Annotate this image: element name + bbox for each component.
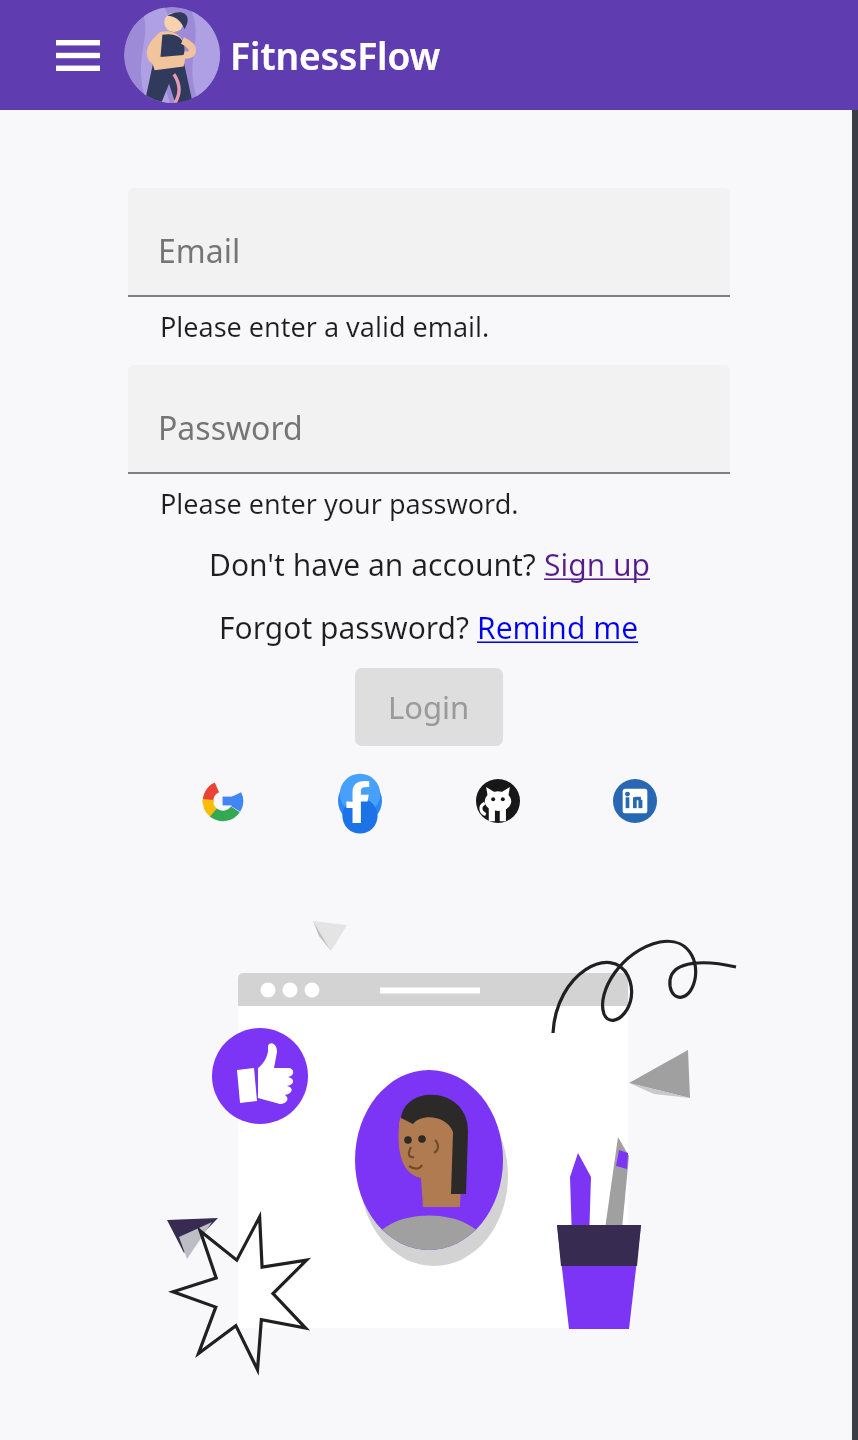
button[interactable]: FitnessFlow logo [124, 7, 220, 103]
button[interactable]: Sign in with GitHub [473, 776, 523, 826]
button[interactable]: Sign in with Facebook [335, 776, 385, 826]
button[interactable]: Email [128, 188, 730, 297]
staticText: Forgot password? [219, 607, 477, 648]
button[interactable]: Open navigation menu [54, 31, 102, 79]
staticText: Password [158, 406, 303, 450]
button[interactable]: Remind me [477, 607, 639, 648]
staticText: Login [388, 686, 470, 728]
staticText: Don't have an account? [209, 544, 544, 585]
button[interactable]: Sign in with LinkedIn [610, 776, 660, 826]
staticText: Sign up [544, 544, 650, 585]
staticText: Remind me [477, 607, 639, 648]
staticText: Please enter a valid email. [160, 308, 490, 345]
staticText: Email [158, 229, 241, 273]
staticText: FitnessFlow [230, 30, 441, 80]
staticText: Please enter your password. [160, 485, 519, 522]
button[interactable]: Login [355, 668, 503, 746]
button[interactable]: Sign in with Google [198, 776, 248, 826]
button[interactable]: Password [128, 365, 730, 474]
button[interactable]: Sign up [544, 544, 650, 585]
